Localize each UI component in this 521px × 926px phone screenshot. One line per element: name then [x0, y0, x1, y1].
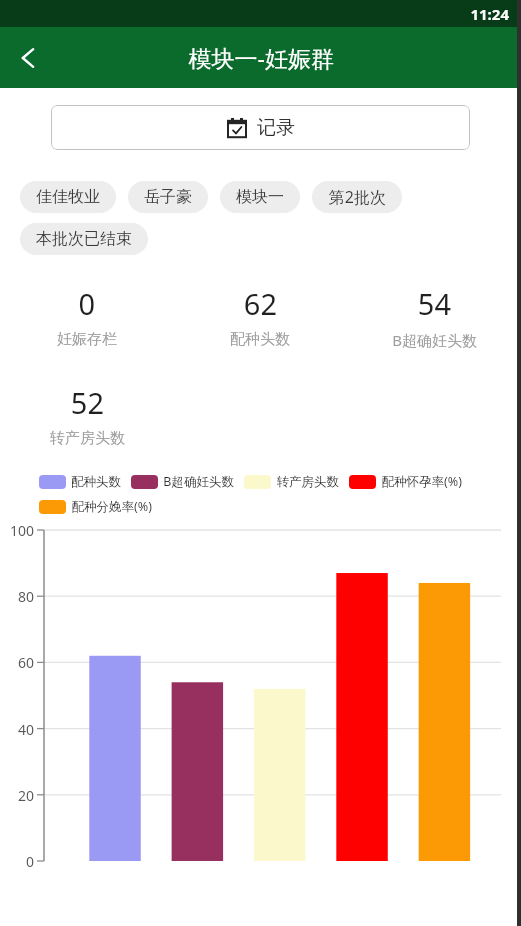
staticText: 转产房头数 [276, 474, 339, 490]
staticText: 100 [0, 521, 34, 540]
staticText: B超确妊头数 [163, 473, 234, 490]
staticText: 52 [70, 383, 104, 422]
staticText: 11:24 [470, 4, 509, 24]
button[interactable]: 本批次已结束 [20, 223, 148, 255]
staticText: 模块一-妊娠群 [188, 42, 334, 73]
staticText: 54 [417, 284, 451, 323]
staticText: 配种头数 [230, 330, 290, 349]
staticText: 40 [0, 720, 34, 739]
button[interactable]: 记录 [51, 105, 470, 150]
button[interactable]: 第2批次 [312, 181, 402, 213]
staticText: 62 [243, 284, 277, 323]
staticText: 0 [0, 852, 34, 871]
button[interactable]: 54 [347, 284, 521, 350]
staticText: 配种怀孕率(%) [381, 473, 462, 490]
button[interactable]: 模块一 [220, 181, 300, 213]
staticText: 岳子豪 [144, 187, 192, 207]
button[interactable]: 52 [0, 383, 174, 448]
staticText: 本批次已结束 [36, 229, 132, 249]
button[interactable]: 62 [173, 284, 347, 349]
staticText: 第2批次 [328, 186, 386, 208]
staticText: 60 [0, 653, 34, 672]
button[interactable]: 岳子豪 [128, 181, 208, 213]
staticText: 模块一 [236, 187, 284, 207]
staticText: 记录 [257, 116, 295, 140]
staticText: 妊娠存栏 [57, 330, 117, 349]
button[interactable]: 0 [0, 284, 173, 349]
staticText: B超确妊头数 [392, 330, 477, 350]
staticText: 转产房头数 [50, 429, 125, 448]
button[interactable]: 佳佳牧业 [20, 181, 116, 213]
staticText: 80 [0, 587, 34, 606]
staticText: 0 [78, 284, 95, 323]
staticText: 20 [0, 786, 34, 805]
staticText: 配种头数 [71, 474, 121, 490]
staticText: 配种分娩率(%) [71, 498, 152, 515]
button[interactable]: Back [0, 30, 56, 86]
staticText: 佳佳牧业 [36, 187, 100, 207]
